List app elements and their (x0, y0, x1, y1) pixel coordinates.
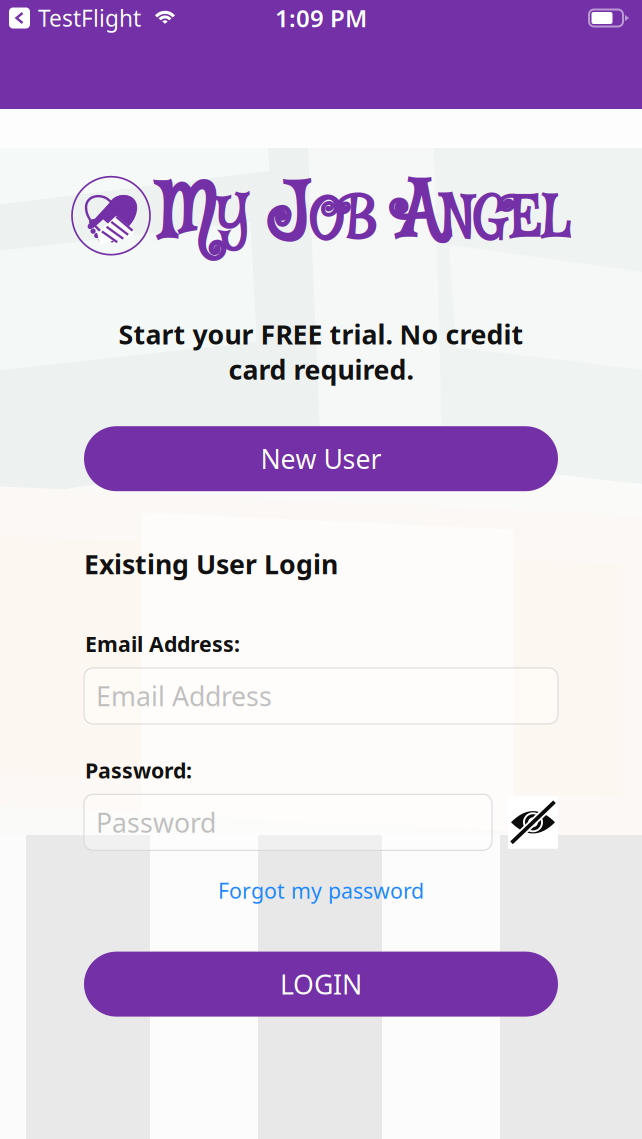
staticText: card required. (228, 352, 413, 387)
staticText: Password (96, 805, 216, 840)
staticText: Email Address (96, 678, 272, 714)
staticText: Email Address: (85, 630, 240, 658)
staticText: Existing User Login (84, 546, 338, 582)
staticText: New User (260, 441, 381, 476)
staticText: TestFlight (38, 3, 141, 33)
staticText: MY JOB ANGEL (158, 166, 570, 265)
button[interactable]: Forgot my password (218, 876, 424, 905)
button[interactable]: Show password (508, 796, 558, 849)
staticText: 1:09 PM (275, 2, 367, 34)
staticText: Start your FREE trial. No credit (118, 316, 523, 352)
staticText: LOGIN (280, 966, 362, 1002)
staticText: Password: (85, 756, 192, 784)
staticText: Forgot my password (218, 876, 424, 905)
button[interactable]: LOGIN (84, 952, 558, 1017)
button[interactable]: New User (84, 426, 558, 491)
